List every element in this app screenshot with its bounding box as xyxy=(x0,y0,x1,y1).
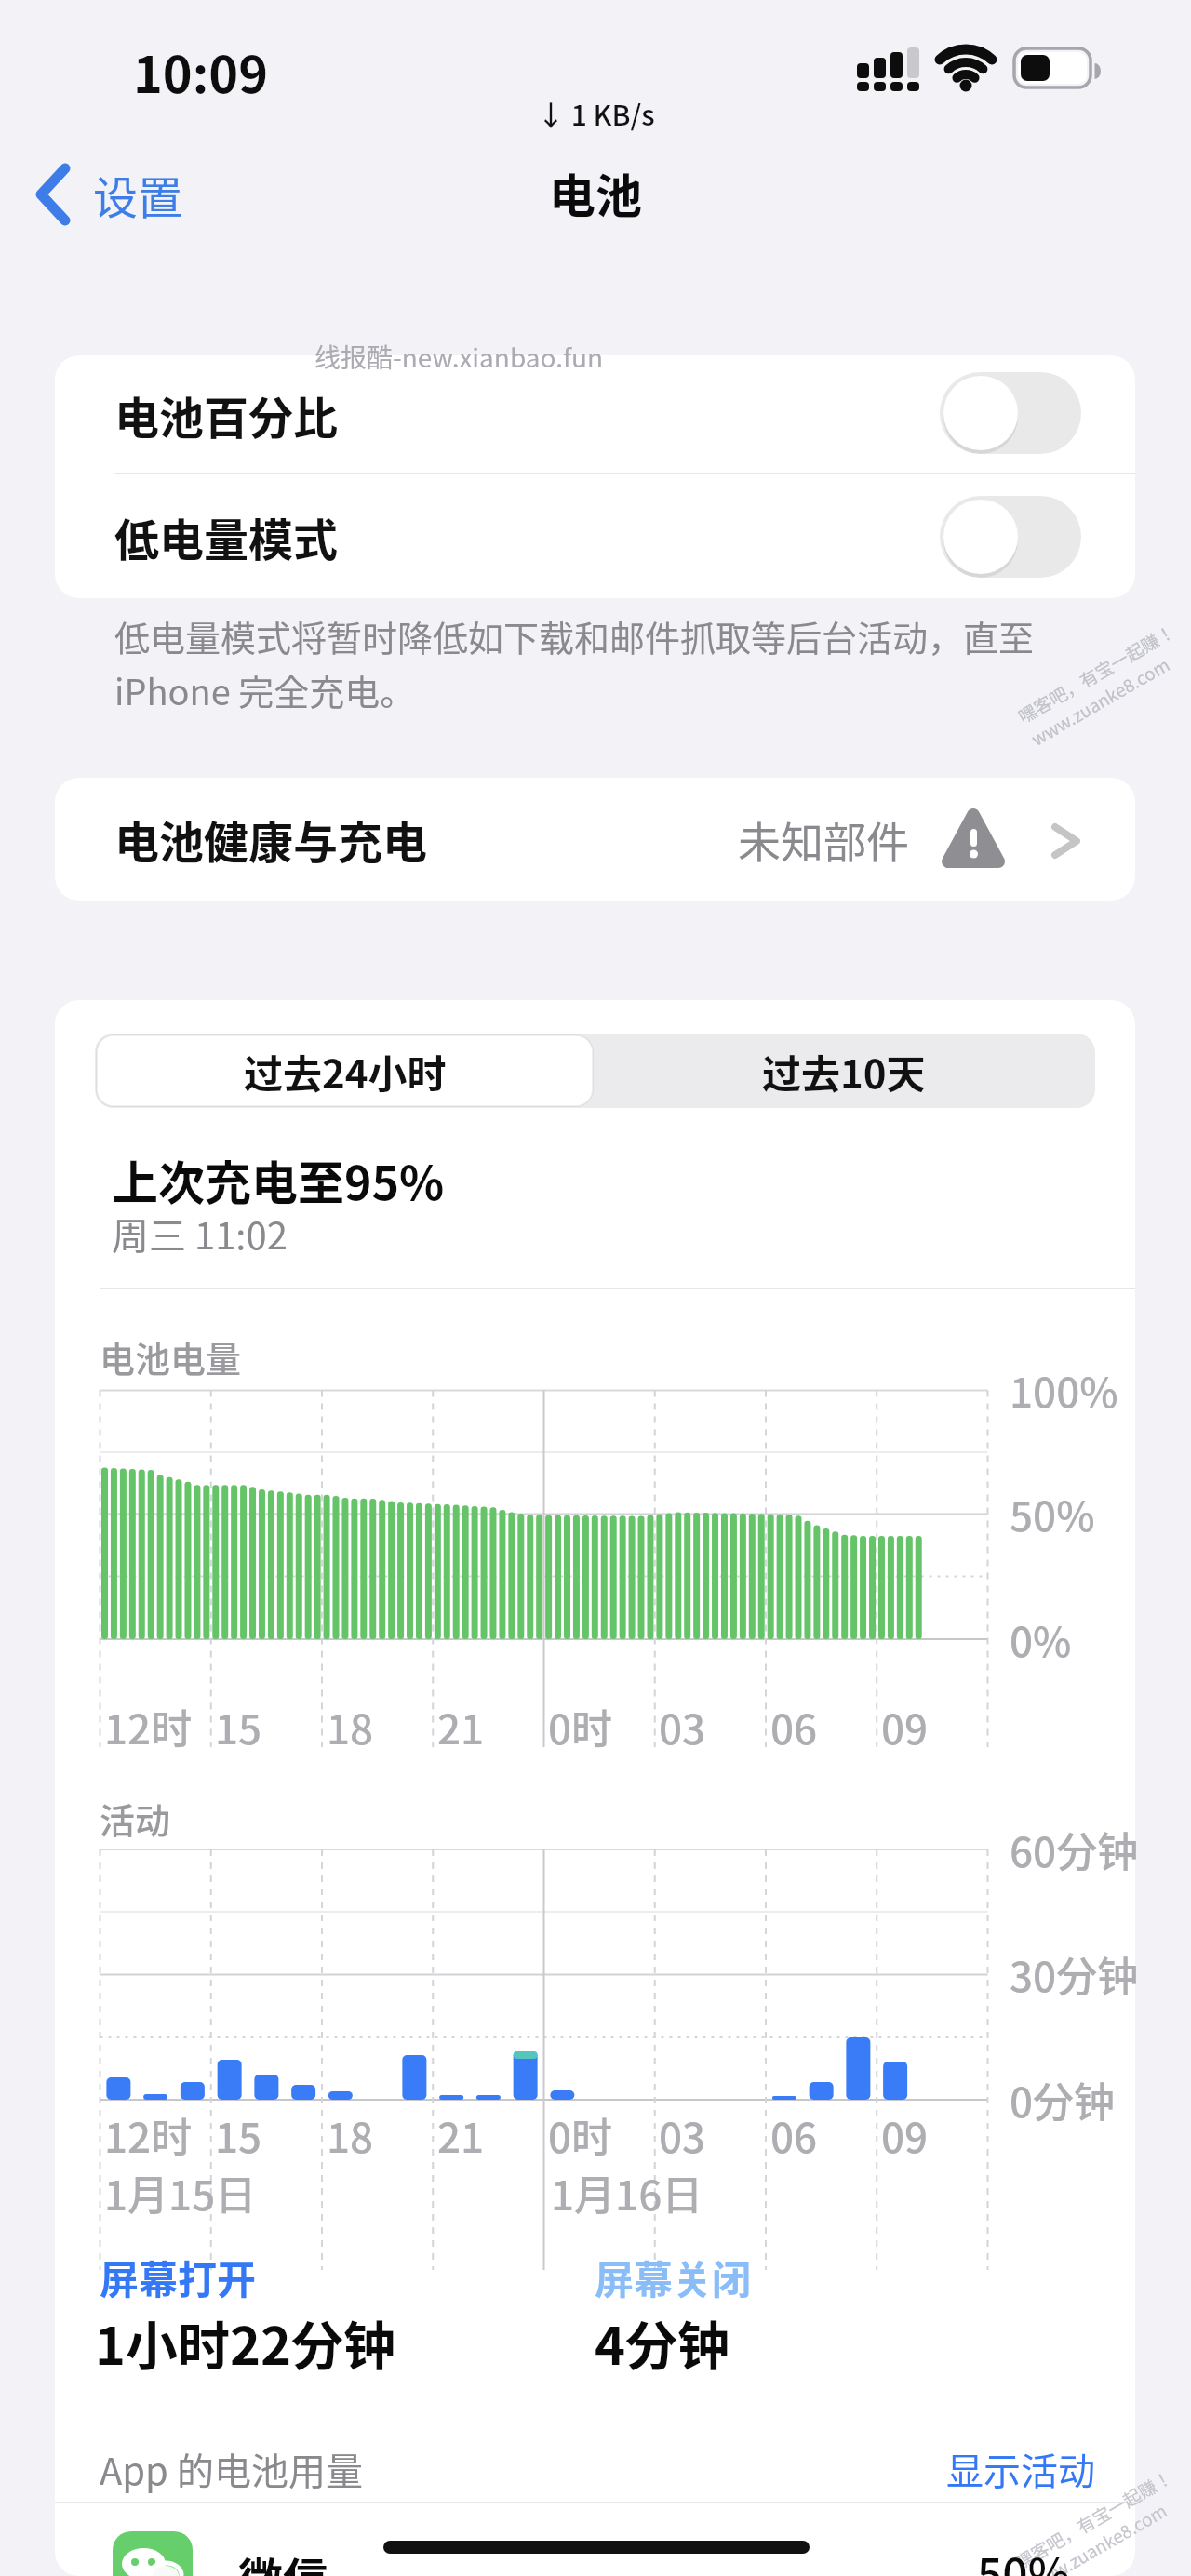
staticText: 屏幕关闭 xyxy=(595,2249,752,2305)
staticText: 15 xyxy=(215,2105,262,2165)
staticText: 60分钟 xyxy=(1010,1820,1139,1879)
staticText: 电池电量 xyxy=(100,1331,242,1382)
staticText: 09 xyxy=(881,2105,929,2165)
button[interactable] xyxy=(921,2432,1107,2506)
staticText: 过去24小时 xyxy=(244,1043,447,1100)
staticText: 嘿客吧，有宝一起赚！ www.zuanke8.com xyxy=(1010,2463,1190,2576)
button[interactable] xyxy=(28,158,195,233)
staticText: 03 xyxy=(659,2105,706,2165)
staticText: 设置 xyxy=(93,162,183,227)
staticText: 1月15日 xyxy=(104,2163,257,2222)
staticText: iPhone 完全充电。 xyxy=(114,664,416,715)
staticText: 18 xyxy=(327,2105,374,2165)
button[interactable] xyxy=(55,778,1135,901)
staticText: ↓ 1 KB/s xyxy=(537,93,655,133)
staticText: 0时 xyxy=(548,1697,613,1756)
staticText: 03 xyxy=(659,1697,706,1756)
staticText: 电池 xyxy=(549,159,642,226)
staticText: 09 xyxy=(881,1697,929,1756)
staticText: 1月16日 xyxy=(551,2163,703,2222)
staticText: 周三 11:02 xyxy=(112,1207,288,1261)
button[interactable] xyxy=(595,1035,1091,1106)
staticText: 微信 xyxy=(238,2543,328,2576)
staticText: 电池健康与充电 xyxy=(114,807,428,872)
staticText: 50% xyxy=(977,2539,1070,2576)
staticText: 18 xyxy=(327,1697,374,1756)
staticText: 15 xyxy=(215,1697,262,1756)
button[interactable] xyxy=(940,372,1081,454)
staticText: 12时 xyxy=(104,2105,193,2165)
staticText: 显示活动 xyxy=(946,2442,1095,2496)
staticText: 21 xyxy=(437,2105,485,2165)
staticText: App 的电池用量 xyxy=(100,2442,363,2496)
staticText: 1小时22分钟 xyxy=(95,2304,396,2380)
staticText: 嘿客吧，有宝一起赚！ www.zuanke8.com xyxy=(1013,618,1191,751)
staticText: 06 xyxy=(770,1697,818,1756)
staticText: 线报酷-new.xianbao.fun xyxy=(314,338,604,376)
staticText: 100% xyxy=(1010,1360,1118,1420)
staticText: 低电量模式将暂时降低如下载和邮件抓取等后台活动，直至 xyxy=(114,610,1035,661)
button[interactable] xyxy=(940,496,1081,578)
staticText: 0% xyxy=(1010,1609,1072,1669)
button[interactable] xyxy=(97,1035,593,1106)
staticText: 0分钟 xyxy=(1010,2070,1116,2129)
button[interactable] xyxy=(55,2503,1135,2576)
staticText: 未知部件 xyxy=(738,808,909,871)
staticText: 10:09 xyxy=(133,34,268,107)
staticText: 4分钟 xyxy=(595,2304,730,2380)
staticText: 电池百分比 xyxy=(114,382,339,447)
staticText: 屏幕打开 xyxy=(100,2249,257,2305)
staticText: 0时 xyxy=(548,2105,613,2165)
staticText: 活动 xyxy=(100,1793,171,1844)
staticText: 上次充电至95% xyxy=(112,1146,445,1213)
staticText: 12时 xyxy=(104,1697,193,1756)
staticText: 50% xyxy=(1010,1484,1095,1543)
staticText: 30分钟 xyxy=(1010,1944,1139,2004)
staticText: 06 xyxy=(770,2105,818,2165)
staticText: 低电量模式 xyxy=(114,504,339,569)
staticText: 21 xyxy=(437,1697,485,1756)
staticText: 过去10天 xyxy=(762,1043,926,1100)
